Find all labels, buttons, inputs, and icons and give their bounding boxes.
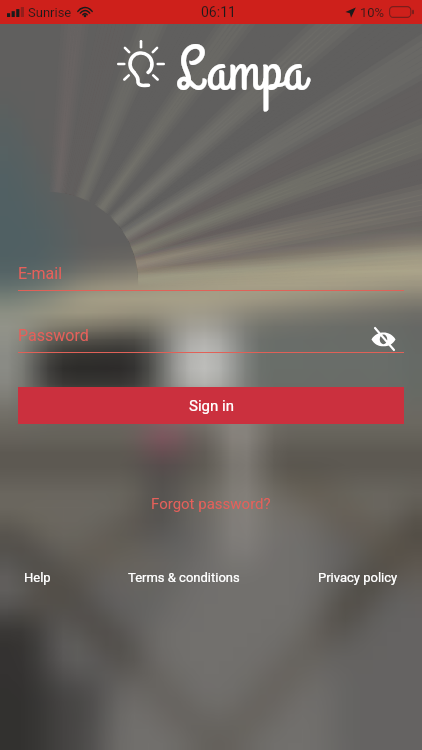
staticText: 10% [360, 5, 385, 20]
staticText: 06:11 [201, 4, 236, 20]
staticText: Sunrise [28, 5, 72, 20]
staticText: Password [18, 326, 89, 345]
button[interactable]: Help [24, 570, 51, 585]
button[interactable]: Show password [366, 322, 400, 356]
button[interactable]: Sign in [18, 387, 404, 424]
staticText: E-mail [18, 264, 63, 283]
staticText: Lampa [176, 30, 306, 113]
staticText: Sign in [189, 397, 234, 415]
button[interactable]: Forgot password? [147, 491, 275, 517]
button[interactable]: Privacy policy [318, 570, 398, 585]
button[interactable]: Terms & conditions [128, 570, 240, 585]
